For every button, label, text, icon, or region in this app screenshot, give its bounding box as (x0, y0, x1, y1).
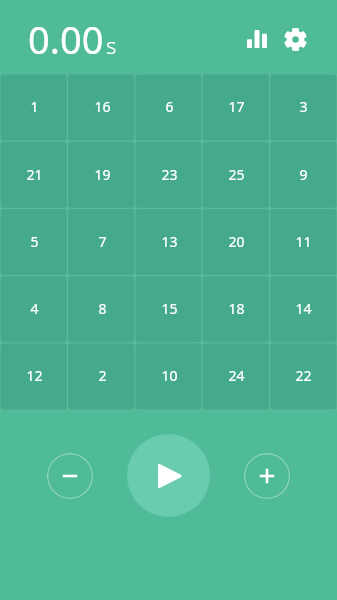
staticText: 19 (94, 165, 111, 184)
staticText: 17 (228, 97, 245, 116)
staticText: 5 (30, 232, 39, 251)
staticText: 2 (98, 366, 107, 385)
staticText: 12 (26, 366, 43, 385)
button[interactable]: 15 (136, 276, 203, 343)
button[interactable]: 5 (0, 209, 68, 276)
button[interactable]: 19 (68, 142, 136, 209)
staticText: 16 (94, 97, 111, 116)
staticText: 15 (161, 299, 178, 318)
button[interactable]: 9 (270, 142, 337, 209)
staticText: 8 (98, 299, 107, 318)
button[interactable]: 17 (203, 74, 270, 142)
staticText: 21 (26, 165, 43, 184)
button[interactable]: 25 (203, 142, 270, 209)
button[interactable]: 10 (136, 343, 203, 410)
button[interactable]: 3 (270, 74, 337, 142)
button[interactable]: 13 (136, 209, 203, 276)
staticText: 11 (295, 232, 312, 251)
staticText: 25 (228, 165, 245, 184)
button[interactable]: 18 (203, 276, 270, 343)
button[interactable]: 12 (0, 343, 68, 410)
button[interactable]: 7 (68, 209, 136, 276)
staticText: 9 (299, 165, 308, 184)
button[interactable]: Statistics (239, 21, 275, 57)
staticText: 0.00 (28, 13, 104, 65)
button[interactable]: 24 (203, 343, 270, 410)
staticText: 14 (295, 299, 312, 318)
staticText: 22 (295, 366, 312, 385)
button[interactable]: 16 (68, 74, 136, 142)
button[interactable]: Start (127, 434, 210, 517)
button[interactable]: 20 (203, 209, 270, 276)
button[interactable]: Decrease (47, 453, 93, 499)
staticText: 18 (228, 299, 245, 318)
staticText: 1 (30, 97, 39, 116)
staticText: 13 (161, 232, 178, 251)
button[interactable]: 14 (270, 276, 337, 343)
staticText: 7 (98, 232, 107, 251)
staticText: 23 (161, 165, 178, 184)
staticText: 20 (228, 232, 245, 251)
staticText: 10 (161, 366, 178, 385)
staticText: 4 (30, 299, 39, 318)
staticText: 24 (228, 366, 245, 385)
button[interactable]: 21 (0, 142, 68, 209)
button[interactable]: 2 (68, 343, 136, 410)
button[interactable]: 1 (0, 74, 68, 142)
button[interactable]: Increase (244, 453, 290, 499)
staticText: 6 (165, 97, 174, 116)
button[interactable]: 6 (136, 74, 203, 142)
button[interactable]: 23 (136, 142, 203, 209)
button[interactable]: Settings (277, 21, 313, 57)
button[interactable]: 11 (270, 209, 337, 276)
staticText: s (106, 30, 117, 60)
staticText: 3 (299, 97, 308, 116)
button[interactable]: 4 (0, 276, 68, 343)
button[interactable]: 8 (68, 276, 136, 343)
button[interactable]: 22 (270, 343, 337, 410)
